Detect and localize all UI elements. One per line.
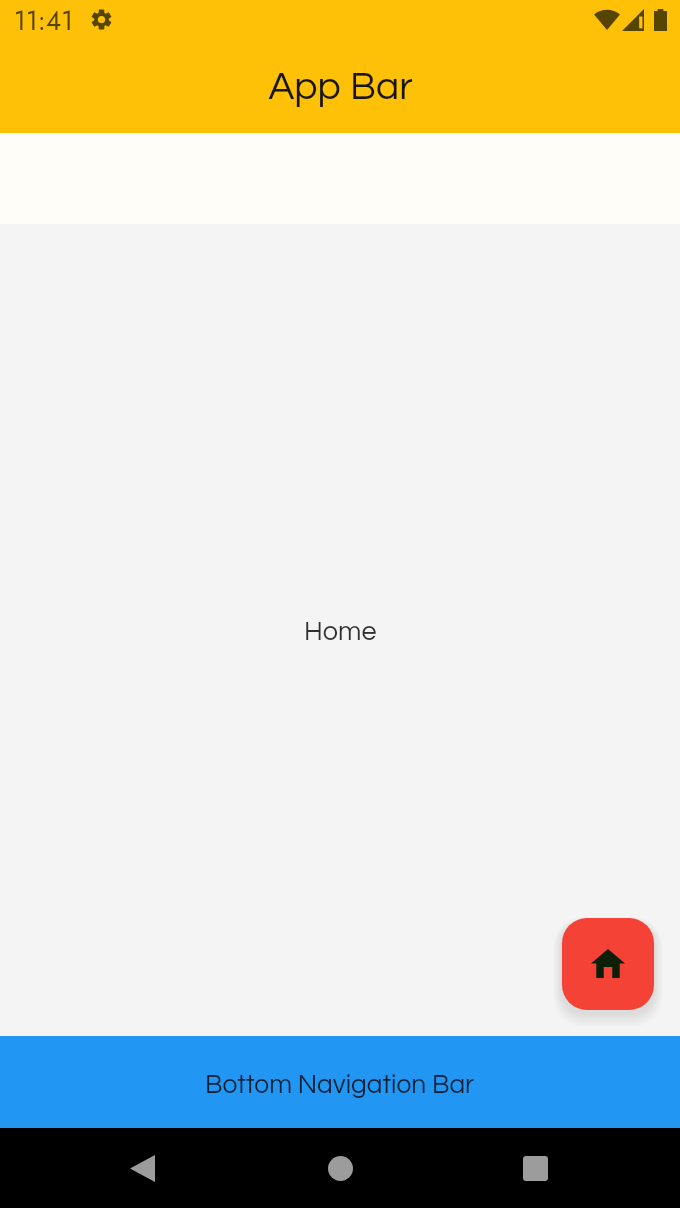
- staticText: Bottom Navigation Bar: [205, 1071, 475, 1098]
- staticText: Home: [304, 618, 377, 646]
- button[interactable]: Bottom Navigation Bar: [0, 1036, 680, 1128]
- staticText: App Bar: [268, 67, 413, 107]
- button[interactable]: Home: [562, 918, 654, 1010]
- button[interactable]: Home: [308, 1136, 372, 1200]
- button[interactable]: Back: [110, 1136, 174, 1200]
- button[interactable]: Recent apps: [503, 1136, 567, 1200]
- button[interactable]: Settings: [91, 9, 112, 30]
- staticText: 11:41: [14, 2, 74, 40]
